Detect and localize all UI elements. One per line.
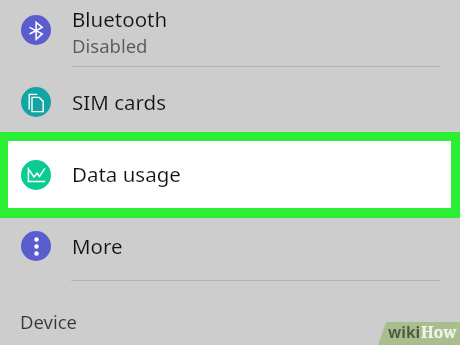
button[interactable]: More (0, 218, 460, 280)
staticText: Device (20, 309, 78, 334)
staticText: wiki (388, 321, 421, 342)
staticText: Disabled (72, 33, 148, 58)
staticText: How (421, 321, 457, 342)
staticText: SIM cards (72, 88, 166, 116)
button[interactable]: Bluetooth (0, 0, 460, 67)
staticText: Bluetooth (72, 5, 168, 33)
button[interactable]: Data usage (8, 141, 451, 208)
button[interactable]: SIM cards (0, 67, 460, 133)
staticText: Data usage (72, 160, 181, 188)
other: wikiHow (378, 322, 460, 345)
staticText: More (72, 232, 123, 260)
